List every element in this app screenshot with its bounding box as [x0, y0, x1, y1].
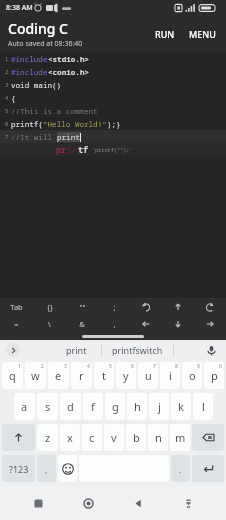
button[interactable]: More suggestions — [6, 343, 20, 357]
staticText: 'printf("");' — [92, 146, 133, 153]
staticText: print — [57, 132, 80, 142]
button[interactable]: Home — [74, 487, 103, 520]
button[interactable]: , — [98, 315, 130, 332]
button[interactable]: . — [171, 455, 190, 482]
staticText: 6 — [131, 363, 134, 370]
button[interactable]: w — [25, 362, 46, 389]
staticText: ?123 — [9, 463, 29, 475]
button[interactable]: Backspace — [192, 424, 224, 451]
button[interactable]: x — [60, 424, 80, 451]
button[interactable]: d — [60, 393, 81, 420]
button[interactable]: a — [14, 393, 35, 420]
staticText: 8:38 AM — [6, 3, 33, 13]
button[interactable]: Shift — [2, 424, 35, 451]
button[interactable]: RUN — [148, 20, 182, 48]
button[interactable]: t — [94, 362, 114, 389]
staticText: 2 — [41, 363, 44, 370]
staticText: r — [79, 368, 84, 383]
button[interactable]: Move up — [162, 298, 194, 315]
button[interactable]: print — [52, 341, 101, 359]
button[interactable]: y — [116, 362, 136, 389]
staticText: z — [45, 430, 51, 445]
button[interactable]: ; — [98, 298, 130, 315]
staticText: j — [158, 399, 161, 414]
staticText: //It will — [11, 132, 57, 142]
button[interactable]: & — [66, 315, 98, 332]
button[interactable]: MENU — [182, 20, 226, 48]
staticText: 3 — [64, 363, 67, 370]
button[interactable]: o — [182, 362, 202, 389]
button[interactable]: n — [148, 424, 168, 451]
staticText: g — [112, 399, 119, 414]
staticText: "Hello World!" — [43, 119, 107, 129]
staticText: u — [145, 368, 152, 383]
button[interactable]: h — [127, 393, 147, 420]
button[interactable]: Voice input — [204, 343, 218, 357]
staticText: print — [66, 344, 87, 356]
button[interactable]: {} — [33, 298, 66, 315]
button[interactable]: p — [204, 362, 224, 389]
staticText: 4 — [5, 94, 9, 101]
button[interactable]: Emoji — [58, 455, 77, 482]
button[interactable]: i — [160, 362, 180, 389]
staticText: MENU — [189, 28, 216, 40]
staticText: <stdio.h> — [48, 54, 90, 64]
staticText: e — [55, 368, 62, 383]
staticText: RUN — [155, 28, 175, 40]
button[interactable]: Undo — [130, 298, 162, 315]
staticText: f — [91, 399, 95, 414]
button[interactable]: pr — [0, 143, 226, 156]
button[interactable]: Redo — [194, 298, 226, 315]
button[interactable]: s — [37, 393, 58, 420]
button[interactable]: b — [126, 424, 146, 451]
staticText: a — [21, 399, 28, 414]
button[interactable]: Hide keyboard — [174, 487, 203, 520]
button[interactable]: e — [48, 362, 69, 389]
button[interactable]: Move right — [194, 315, 226, 332]
button[interactable]: c — [82, 424, 102, 451]
button[interactable]: q — [2, 362, 23, 389]
button[interactable]: printfswitch — [102, 341, 173, 359]
button[interactable]: v — [104, 424, 124, 451]
staticText: ; — [113, 302, 116, 312]
button[interactable]: , — [37, 455, 56, 482]
staticText: pr — [56, 144, 67, 155]
button[interactable]: Back — [124, 487, 153, 520]
button[interactable]: l — [193, 393, 213, 420]
button[interactable]: Enter — [192, 455, 224, 482]
staticText: 5 — [109, 363, 112, 370]
button[interactable]: u — [138, 362, 158, 389]
button[interactable]: ?123 — [2, 455, 35, 482]
staticText: b — [133, 430, 140, 445]
button[interactable]: Recents — [24, 487, 53, 520]
staticText: 2 — [5, 68, 9, 75]
staticText: in — [67, 144, 78, 155]
button[interactable]: f — [83, 393, 103, 420]
staticText: d — [67, 399, 74, 414]
staticText: "" — [79, 302, 86, 312]
staticText: y — [123, 368, 129, 383]
button[interactable]: Move left — [130, 315, 162, 332]
staticText: t — [102, 368, 106, 383]
staticText: #include — [11, 67, 48, 77]
staticText: void main() — [11, 80, 62, 90]
button[interactable]: k — [171, 393, 191, 420]
button[interactable]: m — [170, 424, 190, 451]
button[interactable]: z — [37, 424, 58, 451]
button[interactable]: = — [0, 315, 33, 332]
button[interactable]: \ — [33, 315, 66, 332]
button[interactable]: Move down — [162, 315, 194, 332]
button[interactable]: Tab — [0, 298, 33, 315]
staticText: v — [111, 430, 117, 445]
staticText: 3 — [5, 81, 9, 88]
button[interactable]: j — [149, 393, 169, 420]
staticText: h — [134, 399, 141, 414]
button[interactable]: "" — [66, 298, 98, 315]
staticText: printfswitch — [112, 344, 163, 356]
staticText: i — [169, 368, 172, 383]
staticText: 0 — [219, 363, 222, 370]
button[interactable]: r — [71, 362, 92, 389]
staticText: tf — [78, 144, 89, 155]
button[interactable]: g — [105, 393, 125, 420]
